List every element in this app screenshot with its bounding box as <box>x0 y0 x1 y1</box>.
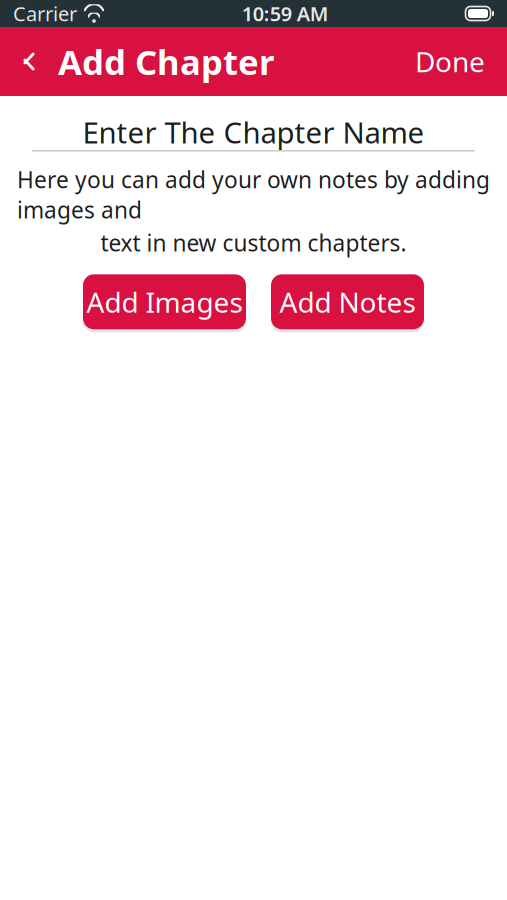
staticText: Here you can add your own notes by addin… <box>17 164 490 225</box>
staticText: 10:59 AM <box>242 0 329 27</box>
button[interactable]: Back <box>8 35 58 87</box>
button[interactable]: Done <box>403 35 497 87</box>
button[interactable]: Add Notes <box>271 272 424 332</box>
button[interactable]: Add Images <box>83 272 246 332</box>
staticText: Enter The Chapter Name <box>82 112 424 151</box>
staticText: Done <box>415 43 485 80</box>
staticText: Carrier <box>13 0 77 27</box>
staticText: Add Chapter <box>58 38 274 84</box>
staticText: text in new custom chapters. <box>100 228 406 258</box>
staticText: Add Images <box>86 283 242 320</box>
staticText: Add Notes <box>279 283 415 320</box>
